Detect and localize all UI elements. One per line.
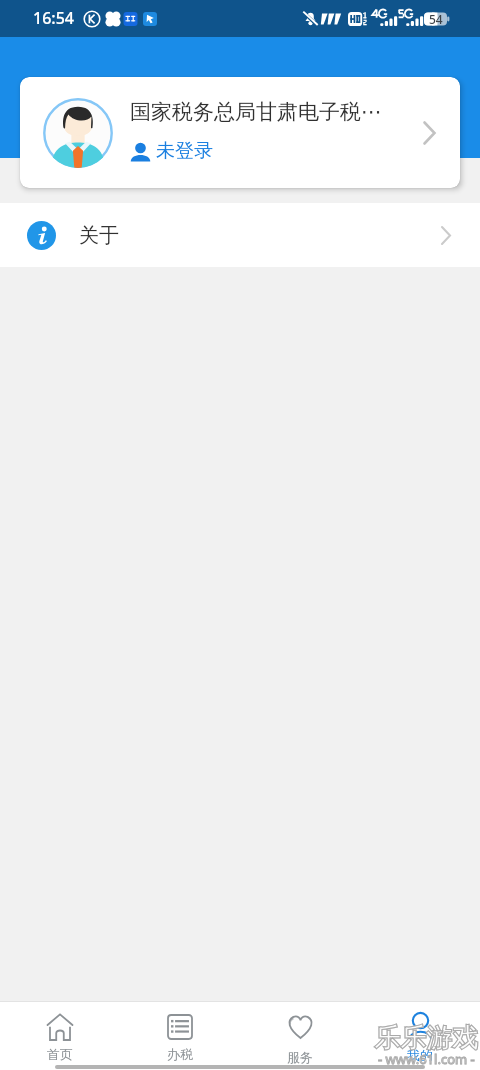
staticText: - www.61l.com - xyxy=(378,1050,475,1068)
staticText: 服务 xyxy=(287,1049,313,1064)
staticText: 国家税务总局甘肃电子税⋯ xyxy=(130,99,382,125)
button[interactable]: 关于 xyxy=(0,203,480,267)
button[interactable]: 首页 xyxy=(0,1002,120,1064)
staticText: 首页 xyxy=(47,1046,73,1062)
staticText: 办税 xyxy=(167,1046,193,1062)
other: Open about xyxy=(441,226,451,245)
staticText: - www.61l.com - xyxy=(378,1050,475,1068)
staticText: 我的 xyxy=(407,1047,433,1063)
button[interactable]: 我的 xyxy=(360,1002,480,1064)
staticText: 未登录 xyxy=(156,139,213,163)
button[interactable]: 服务 xyxy=(240,1002,360,1064)
staticText: 乐乐游戏 xyxy=(374,1022,478,1055)
staticText: 16:54 xyxy=(33,7,74,29)
staticText: 54 xyxy=(429,11,443,27)
button[interactable]: 国家税务总局甘肃电子税⋯ xyxy=(20,77,460,188)
staticText: 关于 xyxy=(79,223,119,248)
other: More xyxy=(423,121,436,145)
button[interactable]: 办税 xyxy=(120,1002,240,1064)
staticText: 乐乐游戏 xyxy=(374,1022,478,1055)
